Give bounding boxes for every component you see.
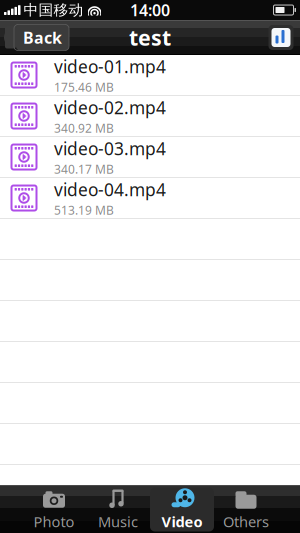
- staticText: Photo: [33, 512, 74, 531]
- staticText: video-03.mp4: [54, 137, 166, 160]
- staticText: Music: [98, 512, 138, 531]
- button[interactable]: video-03.mp4: [0, 137, 300, 178]
- button[interactable]: Video: [150, 487, 214, 531]
- button[interactable]: video-02.mp4: [0, 96, 300, 137]
- staticText: Back: [23, 27, 62, 48]
- button[interactable]: Back: [5, 24, 69, 50]
- button[interactable]: Others: [214, 487, 278, 531]
- button[interactable]: Select all: [267, 23, 295, 51]
- staticText: video-02.mp4: [54, 96, 166, 119]
- staticText: Others: [223, 512, 269, 531]
- button[interactable]: video-04.mp4: [0, 178, 300, 219]
- staticText: video-01.mp4: [54, 55, 166, 78]
- button[interactable]: video-01.mp4: [0, 55, 300, 96]
- button[interactable]: Photo: [22, 487, 86, 531]
- staticText: 175.46 MB: [54, 79, 114, 95]
- staticText: Video: [161, 512, 202, 531]
- staticText: video-04.mp4: [54, 178, 166, 201]
- staticText: 中国移动: [23, 1, 83, 19]
- staticText: 513.19 MB: [54, 202, 114, 218]
- staticText: test: [129, 23, 171, 52]
- staticText: 340.92 MB: [54, 120, 114, 136]
- button[interactable]: Music: [86, 487, 150, 531]
- staticText: 14:00: [130, 0, 170, 21]
- staticText: 340.17 MB: [54, 161, 114, 177]
